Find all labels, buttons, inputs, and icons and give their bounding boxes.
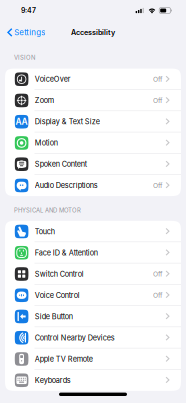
staticText: PHYSICAL AND MOTOR	[14, 207, 81, 214]
staticText: Keyboards	[35, 376, 71, 385]
staticText: Display & Text Size	[35, 117, 100, 126]
button[interactable]: Settings	[0, 25, 51, 40]
staticText: Voice Control	[35, 291, 80, 300]
staticText: Audio Descriptions	[35, 181, 98, 190]
button[interactable]: VoiceOver	[5, 69, 181, 90]
staticText: VoiceOver	[35, 75, 71, 84]
staticText: VISION	[14, 54, 35, 61]
staticText: Off	[153, 270, 162, 278]
staticText: AA	[16, 117, 28, 127]
staticText: Switch Control	[35, 269, 84, 278]
button[interactable]: Audio Descriptions	[5, 175, 181, 196]
button[interactable]: Keyboards	[5, 370, 181, 391]
button[interactable]: Zoom	[5, 90, 181, 111]
button[interactable]: Motion	[5, 132, 181, 153]
button[interactable]: Side Button	[5, 306, 181, 327]
button[interactable]: Apple TV Remote	[5, 348, 181, 370]
staticText: Off	[153, 96, 162, 104]
staticText: Off	[153, 75, 162, 83]
button[interactable]: Spoken Content	[5, 154, 181, 175]
staticText: Face ID & Attention	[35, 248, 98, 257]
staticText: Settings	[14, 28, 45, 37]
staticText: Motion	[35, 138, 58, 147]
button[interactable]: AA	[5, 111, 181, 132]
button[interactable]: Touch	[5, 221, 181, 242]
staticText: Control Nearby Devices	[35, 333, 115, 342]
staticText: Off	[153, 181, 162, 189]
staticText: Touch	[35, 227, 55, 236]
staticText: Off	[153, 291, 162, 299]
button[interactable]: Face ID & Attention	[5, 242, 181, 263]
staticText: Accessibility	[71, 28, 115, 37]
button[interactable]: Voice Control	[5, 285, 181, 306]
staticText: Apple TV Remote	[35, 354, 93, 363]
staticText: 9:47	[21, 6, 36, 15]
staticText: Spoken Content	[35, 160, 87, 169]
staticText: Zoom	[35, 96, 54, 105]
staticText: Side Button	[35, 312, 73, 321]
button[interactable]: Switch Control	[5, 263, 181, 285]
button[interactable]: Control Nearby Devices	[5, 327, 181, 348]
